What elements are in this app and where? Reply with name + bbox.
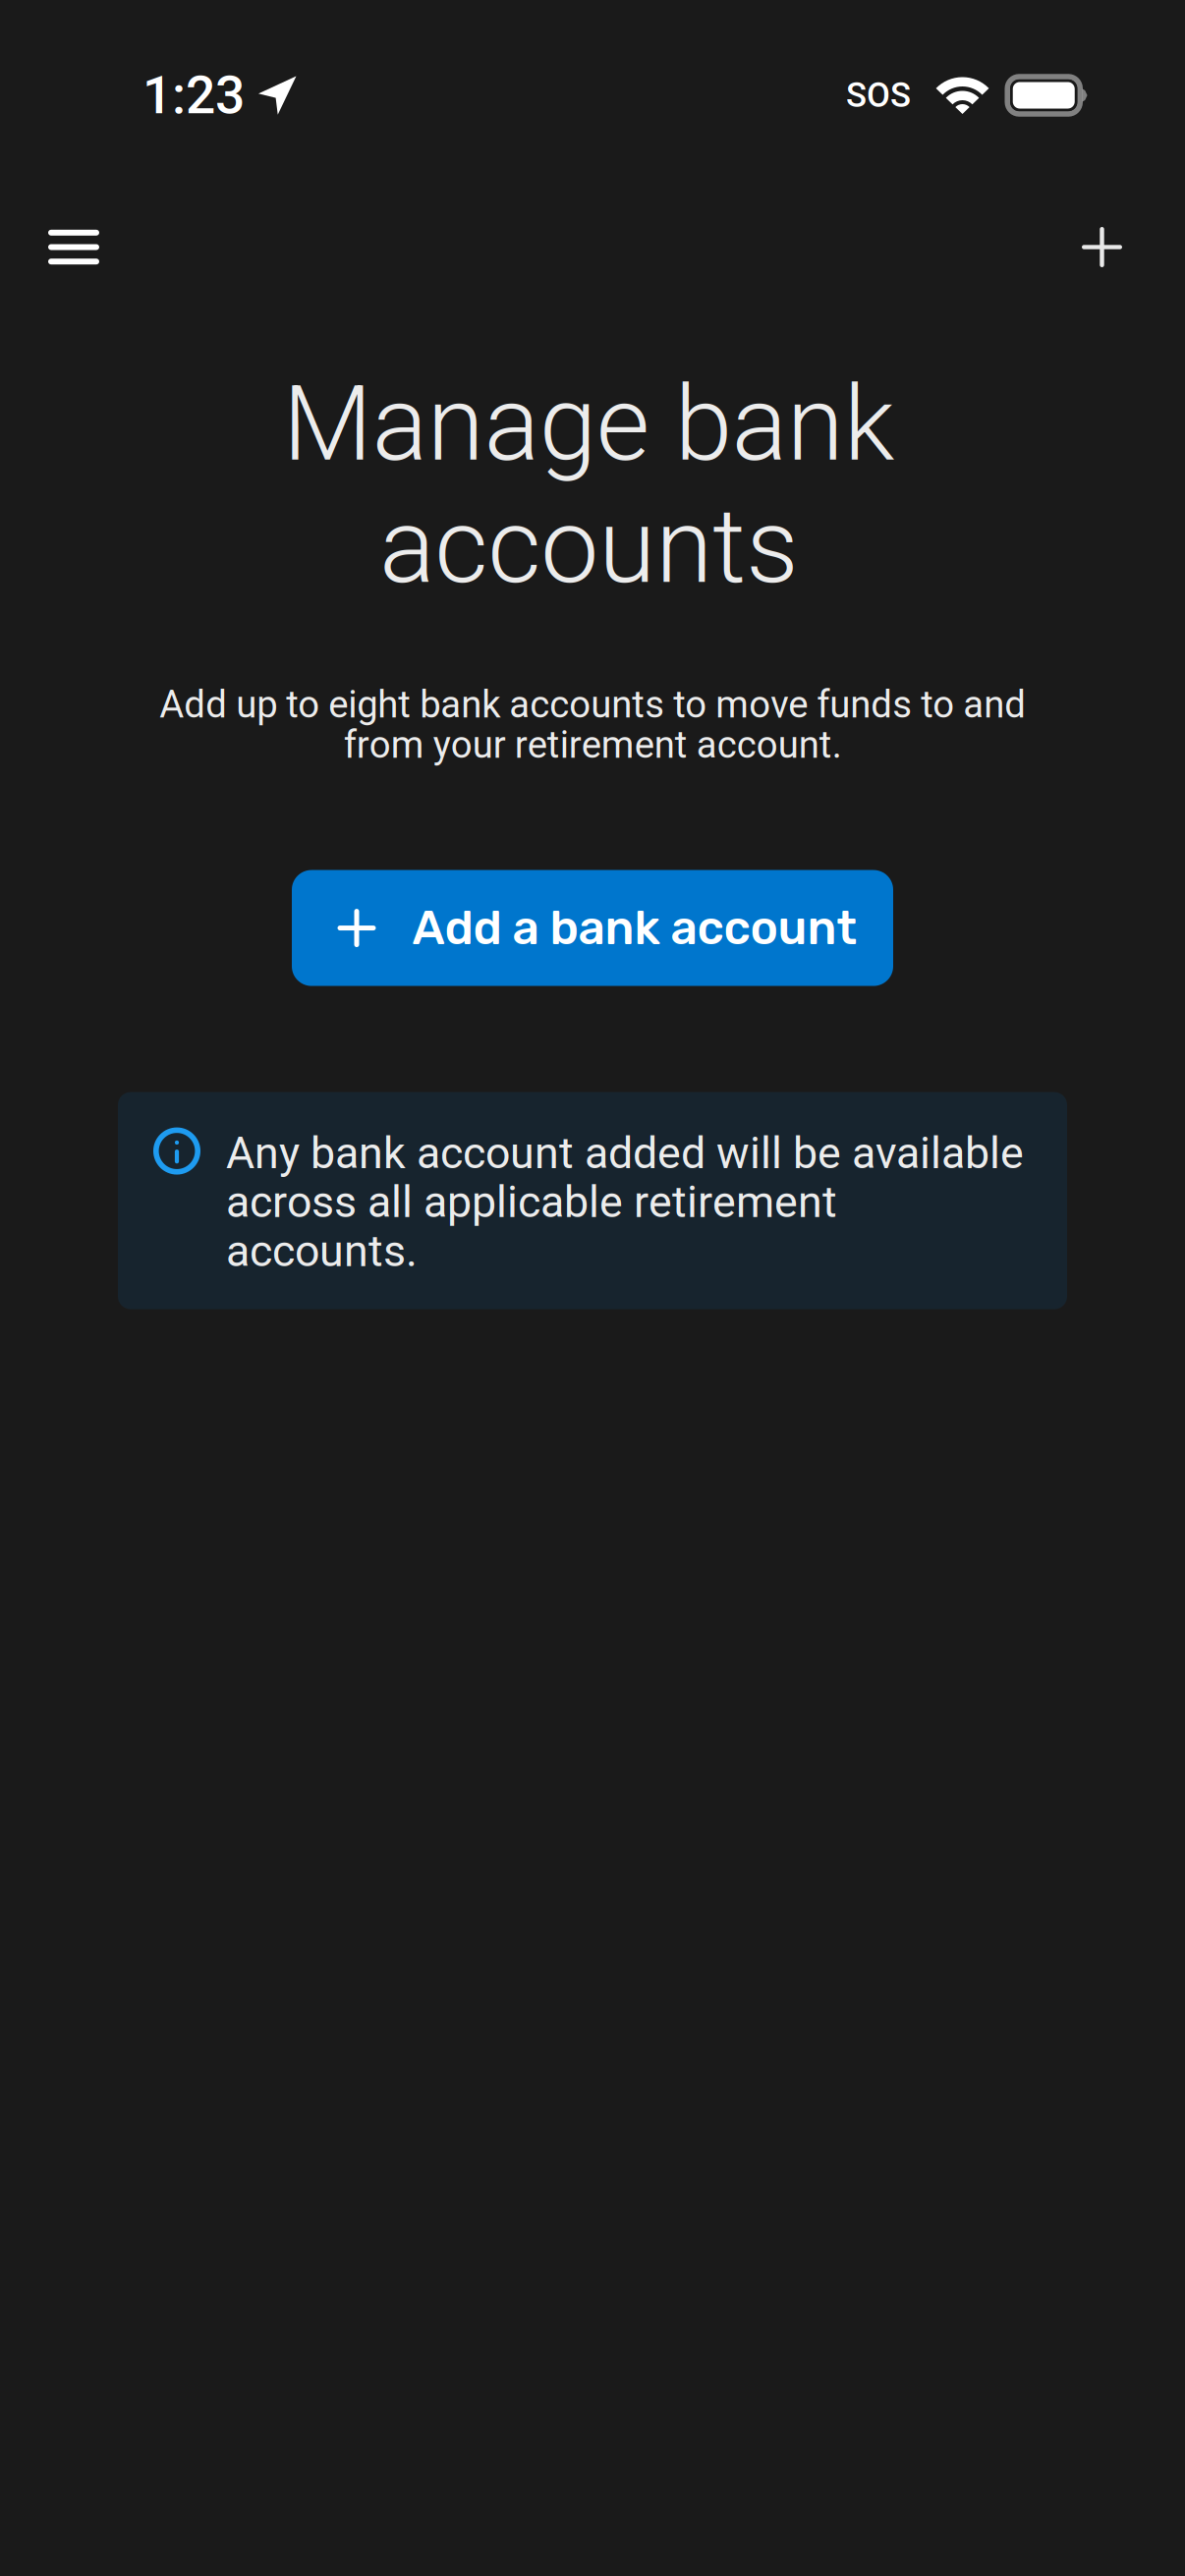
button[interactable]: Menu [23, 200, 125, 294]
staticText: Add up to eight bank accounts to move fu… [159, 683, 1026, 767]
staticText: Any bank account added will be available… [226, 1127, 1024, 1277]
staticText: Manage bank accounts [282, 364, 895, 607]
staticText: SOS [846, 75, 911, 115]
button[interactable]: Add a bank account [292, 870, 893, 986]
staticText: 1:23 [142, 65, 245, 126]
staticText: Add a bank account [412, 900, 857, 956]
button[interactable]: Add account [1056, 199, 1162, 295]
